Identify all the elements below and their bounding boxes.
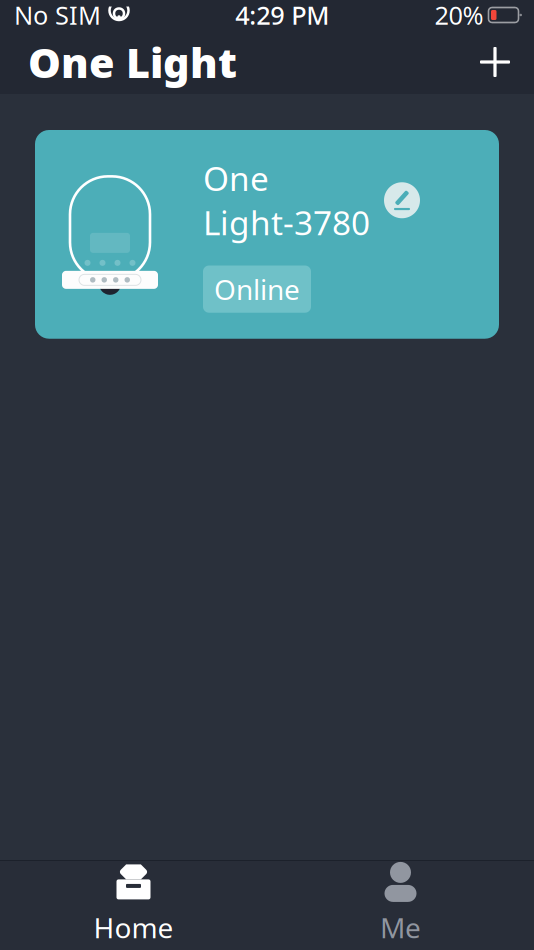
staticText: Me <box>380 909 421 946</box>
staticText: No SIM <box>14 0 101 32</box>
staticText: 4:29 PM <box>235 0 329 32</box>
staticText: One Light <box>28 35 237 89</box>
staticText: One Light-3780 <box>203 156 370 244</box>
staticText: 20% <box>434 0 483 32</box>
button[interactable]: One Light-3780 <box>35 130 499 339</box>
button[interactable]: Add device <box>466 33 524 91</box>
button[interactable]: Me <box>267 860 534 950</box>
button[interactable]: Home <box>0 860 267 950</box>
staticText: Home <box>93 909 173 946</box>
staticText: Online <box>214 270 300 308</box>
